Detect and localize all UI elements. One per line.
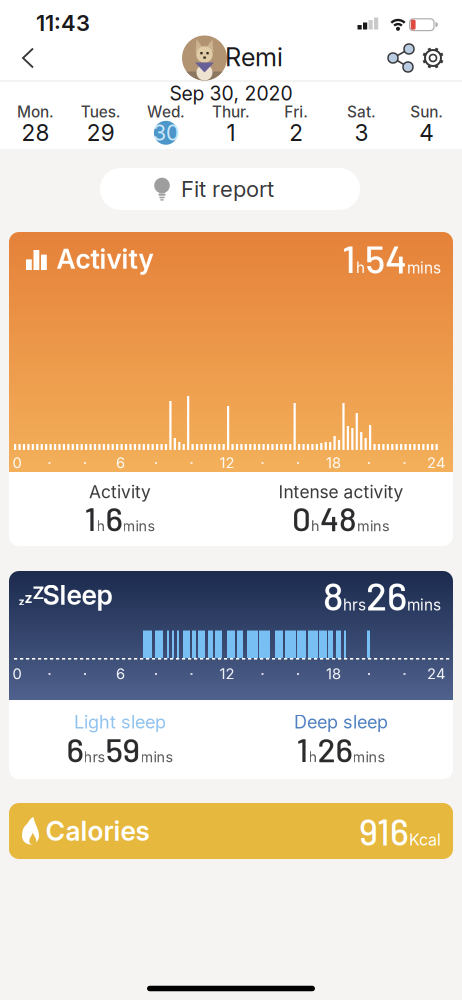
staticText: 1 bbox=[84, 498, 96, 538]
staticText: Light sleep bbox=[74, 711, 166, 733]
staticText: 6 bbox=[116, 454, 125, 472]
staticText: mins bbox=[352, 748, 385, 766]
button[interactable]: Sun. bbox=[398, 103, 456, 144]
staticText: 18 bbox=[326, 454, 341, 472]
staticText: Sep 30, 2020 bbox=[169, 82, 292, 105]
button[interactable]: Settings bbox=[411, 36, 455, 80]
staticText: 4 bbox=[419, 119, 434, 146]
staticText: Kcal bbox=[409, 830, 441, 849]
staticText: 916 bbox=[359, 809, 409, 853]
staticText: 30 bbox=[153, 120, 179, 146]
staticText: 0 bbox=[12, 454, 21, 472]
staticText: 6 bbox=[116, 665, 125, 683]
staticText: Sun. bbox=[410, 103, 443, 121]
button[interactable]: Back bbox=[6, 36, 50, 80]
staticText: mins bbox=[122, 517, 155, 535]
staticText: 2 bbox=[289, 119, 303, 146]
staticText: zzZ bbox=[18, 582, 44, 608]
staticText: 26 bbox=[366, 572, 407, 618]
staticText: Remi bbox=[225, 42, 283, 72]
staticText: Fit report bbox=[181, 176, 274, 202]
staticText: Calories bbox=[45, 815, 149, 847]
staticText: 12 bbox=[219, 665, 234, 683]
staticText: mins bbox=[140, 748, 173, 766]
staticText: h bbox=[356, 259, 365, 277]
staticText: mins bbox=[407, 596, 441, 614]
staticText: 0 bbox=[292, 498, 311, 538]
staticText: 26 bbox=[317, 729, 352, 769]
staticText: 24 bbox=[427, 454, 445, 472]
staticText: 3 bbox=[354, 119, 368, 146]
staticText: Mon. bbox=[17, 103, 54, 121]
staticText: Activity bbox=[89, 481, 151, 502]
staticText: 11:43 bbox=[36, 10, 90, 36]
staticText: Wed. bbox=[147, 103, 185, 121]
staticText: 6 bbox=[105, 498, 122, 538]
staticText: 8 bbox=[323, 572, 343, 618]
staticText: 0 bbox=[12, 665, 21, 683]
button[interactable]: Fit report bbox=[100, 168, 360, 210]
staticText: 24 bbox=[427, 665, 445, 683]
staticText: Activity bbox=[56, 243, 153, 275]
staticText: mins bbox=[407, 259, 441, 277]
staticText: 59 bbox=[105, 729, 140, 769]
staticText: 1 bbox=[342, 235, 356, 281]
button[interactable]: Share bbox=[382, 36, 422, 80]
staticText: Fri. bbox=[284, 103, 308, 121]
button[interactable]: Thur. bbox=[202, 103, 260, 144]
button[interactable]: Sat. bbox=[332, 103, 390, 144]
staticText: h bbox=[311, 517, 320, 535]
staticText: 28 bbox=[21, 119, 49, 146]
staticText: 1 bbox=[296, 729, 308, 769]
staticText: Sat. bbox=[347, 103, 376, 121]
staticText: 48 bbox=[320, 498, 357, 538]
staticText: Thur. bbox=[212, 103, 250, 121]
staticText: h bbox=[96, 517, 105, 535]
staticText: hrs bbox=[83, 748, 105, 766]
staticText: Intense activity bbox=[278, 481, 403, 502]
staticText: 12 bbox=[219, 454, 234, 472]
staticText: Sleep bbox=[42, 579, 112, 611]
staticText: 6 bbox=[66, 729, 83, 769]
staticText: 1 bbox=[227, 119, 236, 146]
button[interactable]: Mon. bbox=[6, 103, 64, 144]
staticText: 18 bbox=[326, 665, 341, 683]
staticText: 29 bbox=[87, 119, 115, 146]
button[interactable]: Wed. bbox=[137, 103, 195, 144]
staticText: Tues. bbox=[81, 103, 121, 121]
button[interactable]: Tues. bbox=[72, 103, 130, 144]
staticText: Deep sleep bbox=[294, 711, 388, 733]
staticText: 54 bbox=[365, 235, 407, 281]
staticText: hrs bbox=[343, 596, 366, 614]
staticText: mins bbox=[357, 517, 390, 535]
button[interactable]: Fri. bbox=[267, 103, 325, 144]
staticText: h bbox=[308, 748, 317, 766]
